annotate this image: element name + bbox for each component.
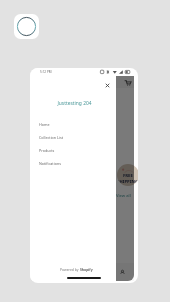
button[interactable]: Collection List: [30, 131, 116, 144]
staticText: SHIPPING: [117, 179, 138, 185]
staticText: View all: [116, 193, 131, 199]
staticText: Powered by: [60, 267, 80, 272]
button[interactable]: Notifications: [30, 157, 116, 170]
staticText: on all orders: [121, 185, 136, 186]
staticText: Justtesting 204: [33, 100, 116, 107]
staticText: Collection List: [39, 135, 64, 140]
staticText: Shopify: [80, 267, 93, 272]
staticText: 5:12 PM: [40, 70, 52, 74]
button[interactable]: Account: [116, 266, 128, 278]
button[interactable]: App icon: [14, 14, 39, 39]
staticText: Products: [39, 148, 55, 153]
button[interactable]: Close drawer: [102, 80, 112, 90]
button[interactable]: Cart: [122, 77, 133, 88]
button[interactable]: Products: [30, 144, 116, 157]
staticText: Home: [39, 122, 50, 127]
staticText: Notifications: [39, 161, 61, 166]
staticText: FREE: [123, 173, 133, 179]
button[interactable]: [116, 76, 134, 281]
button[interactable]: View all: [116, 193, 131, 199]
button[interactable]: Home: [30, 118, 116, 131]
